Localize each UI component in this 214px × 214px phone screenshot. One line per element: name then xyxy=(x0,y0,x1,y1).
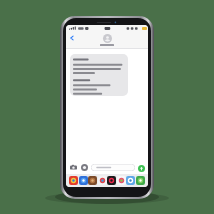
button[interactable] xyxy=(70,54,128,96)
button[interactable]: App xyxy=(126,176,135,185)
button[interactable]: Camera xyxy=(69,163,78,172)
button[interactable]: App xyxy=(88,176,97,185)
button[interactable]: Back xyxy=(67,33,76,42)
button[interactable]: App xyxy=(98,176,107,185)
button[interactable]: Contact profile xyxy=(100,34,114,46)
button[interactable]: App xyxy=(107,176,116,185)
button[interactable]: Message input xyxy=(91,164,135,171)
button[interactable]: App xyxy=(79,176,88,185)
button[interactable]: Send xyxy=(137,164,145,172)
button[interactable]: App xyxy=(136,176,145,185)
button[interactable]: Apps xyxy=(80,163,89,172)
button[interactable]: App xyxy=(117,176,126,185)
button[interactable]: App xyxy=(69,176,78,185)
